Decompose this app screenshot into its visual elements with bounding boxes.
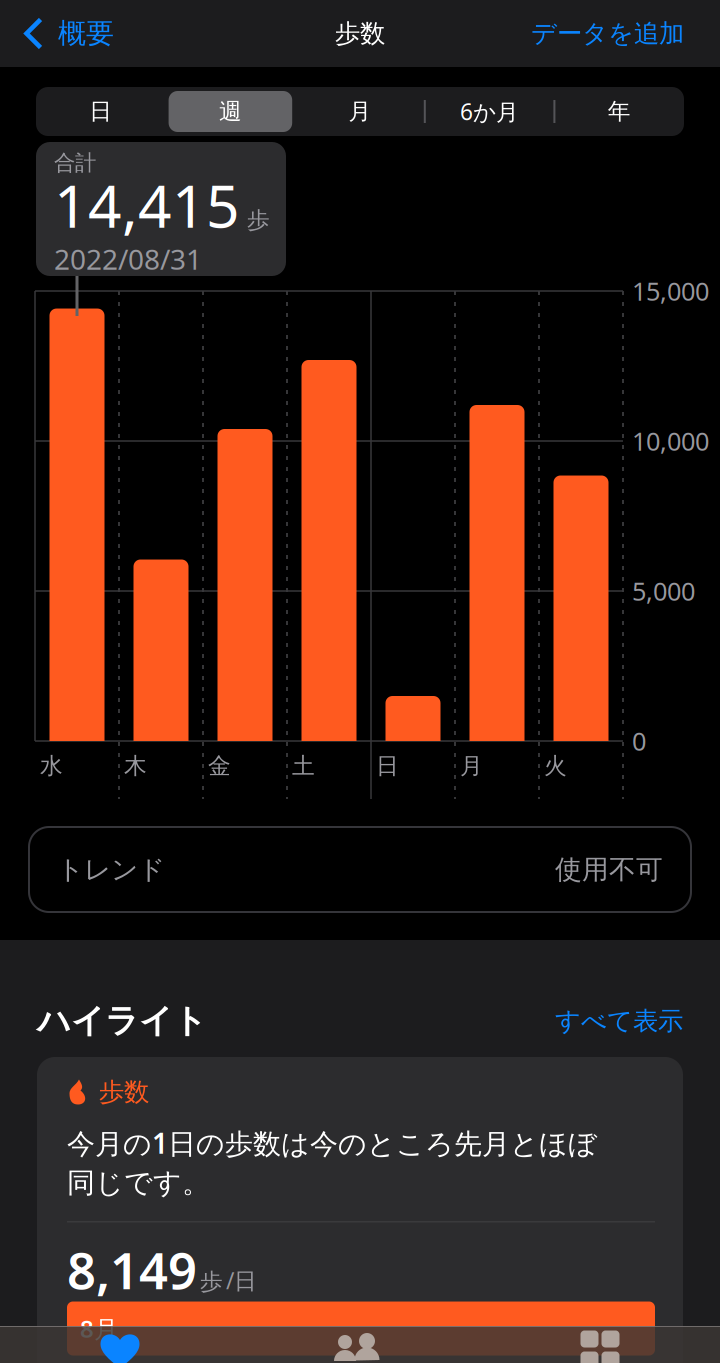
staticText: 火 bbox=[544, 752, 567, 780]
staticText: 8,149 bbox=[67, 1236, 197, 1303]
button[interactable]: トレンド bbox=[29, 827, 691, 912]
button[interactable]: 月 bbox=[295, 87, 425, 136]
staticText: ハイライト bbox=[37, 1000, 207, 1041]
staticText: データを追加 bbox=[531, 18, 684, 49]
staticText: 年 bbox=[608, 98, 631, 125]
staticText: 同じです。 bbox=[67, 1166, 210, 1200]
staticText: 土 bbox=[292, 752, 315, 780]
staticText: 15,000 bbox=[632, 274, 709, 308]
staticText: 今月の1日の歩数は今のところ先月とほぼ bbox=[67, 1124, 597, 1162]
button[interactable]: 6か月 bbox=[425, 87, 554, 136]
button[interactable]: 年 bbox=[554, 87, 684, 136]
staticText: 月 bbox=[348, 98, 371, 125]
staticText: 合計 bbox=[54, 150, 96, 176]
staticText: 歩 bbox=[247, 206, 270, 234]
button[interactable]: 歩数 bbox=[37, 1057, 683, 1363]
staticText: 週 bbox=[219, 98, 242, 125]
staticText: 日 bbox=[89, 98, 112, 125]
button[interactable]: データを追加 bbox=[531, 8, 720, 59]
staticText: 木 bbox=[124, 752, 147, 780]
staticText: すべて表示 bbox=[555, 1005, 683, 1036]
staticText: 月 bbox=[460, 752, 483, 780]
button[interactable]: すべて表示 bbox=[555, 1005, 683, 1036]
staticText: トレンド bbox=[57, 853, 165, 886]
staticText: 歩数 bbox=[335, 18, 385, 49]
staticText: 歩数 bbox=[99, 1076, 149, 1107]
staticText: 6か月 bbox=[460, 96, 519, 126]
staticText: 日 bbox=[376, 752, 399, 780]
staticText: 0 bbox=[632, 724, 646, 758]
staticText: /日 bbox=[226, 1265, 257, 1295]
staticText: 5,000 bbox=[632, 574, 695, 608]
staticText: 金 bbox=[208, 752, 231, 780]
button[interactable]: サマリー bbox=[0, 1336, 240, 1363]
staticText: 14,415 bbox=[54, 166, 240, 244]
button[interactable]: 共有 bbox=[240, 1336, 480, 1363]
staticText: 10,000 bbox=[632, 424, 709, 458]
staticText: 2022/08/31 bbox=[54, 240, 202, 278]
staticText: 概要 bbox=[58, 16, 114, 51]
staticText: 歩 bbox=[200, 1268, 223, 1295]
staticText: 水 bbox=[40, 752, 63, 780]
button[interactable]: 週 bbox=[166, 87, 295, 136]
staticText: 使用不可 bbox=[555, 853, 663, 886]
button[interactable]: ブラウズ bbox=[480, 1336, 720, 1363]
button[interactable]: 概要 bbox=[0, 6, 114, 61]
staticText: 8月 bbox=[80, 1313, 118, 1344]
button[interactable]: 日 bbox=[36, 87, 166, 136]
